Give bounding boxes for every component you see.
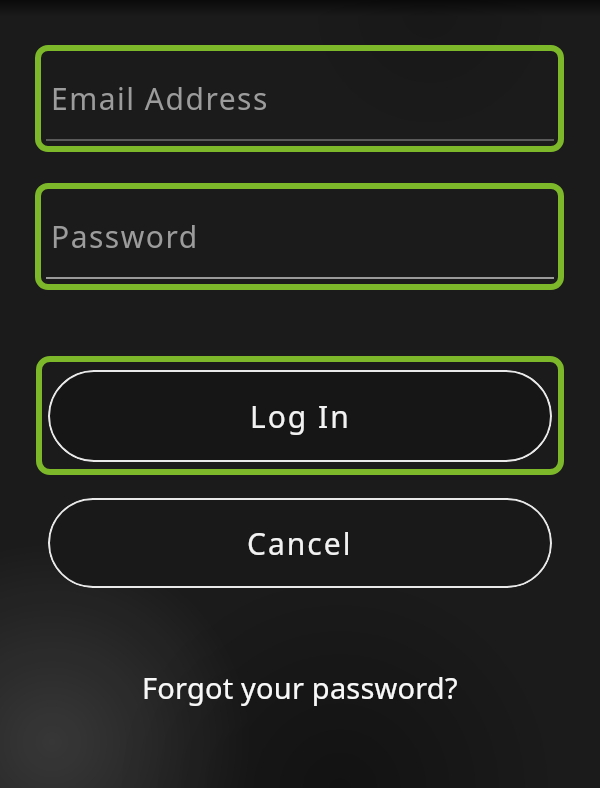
button[interactable]: Log In (48, 370, 552, 462)
button[interactable]: Password (35, 183, 564, 290)
staticText: Cancel (247, 523, 353, 564)
button[interactable]: Forgot your password? (142, 668, 458, 707)
staticText: Password (51, 216, 199, 257)
staticText: Email Address (51, 78, 269, 119)
button[interactable]: Email Address (35, 45, 564, 152)
button[interactable]: Cancel (48, 498, 552, 588)
staticText: Log In (250, 396, 351, 437)
